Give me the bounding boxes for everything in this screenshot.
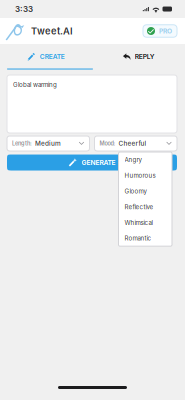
staticText: Length: — [12, 140, 32, 147]
staticText: GENERATE — [81, 158, 115, 167]
button[interactable]: Humorous — [118, 168, 172, 183]
button[interactable]: GENERATE — [7, 154, 177, 170]
staticText: REPLY — [135, 52, 155, 61]
button[interactable]: Angry — [118, 152, 172, 168]
staticText: Humorous — [124, 172, 155, 179]
staticText: Global warming — [13, 81, 57, 88]
button[interactable]: CREATE — [0, 44, 92, 68]
button[interactable]: Whimsical — [118, 215, 172, 230]
staticText: Reflective — [124, 203, 153, 211]
button[interactable]: PRO — [143, 25, 177, 37]
staticText: Romantic — [124, 235, 151, 242]
button[interactable]: Romantic — [118, 230, 172, 246]
staticText: Angry — [124, 156, 141, 163]
staticText: Tweet.AI — [31, 25, 73, 37]
staticText: Whimsical — [124, 219, 152, 226]
staticText: Gloomy — [124, 187, 146, 195]
button[interactable]: Mood: — [94, 136, 177, 151]
button[interactable]: Length: — [7, 136, 89, 151]
staticText: Medium — [35, 140, 61, 147]
button[interactable]: Gloomy — [118, 183, 172, 199]
staticText: 3:33 — [15, 4, 33, 14]
staticText: PRO — [159, 27, 172, 35]
button[interactable]: REPLY — [92, 44, 185, 68]
staticText: Cheerful — [118, 140, 146, 147]
staticText: CREATE — [40, 52, 65, 61]
button[interactable]: Reflective — [118, 199, 172, 215]
staticText: Mood: — [99, 140, 115, 147]
